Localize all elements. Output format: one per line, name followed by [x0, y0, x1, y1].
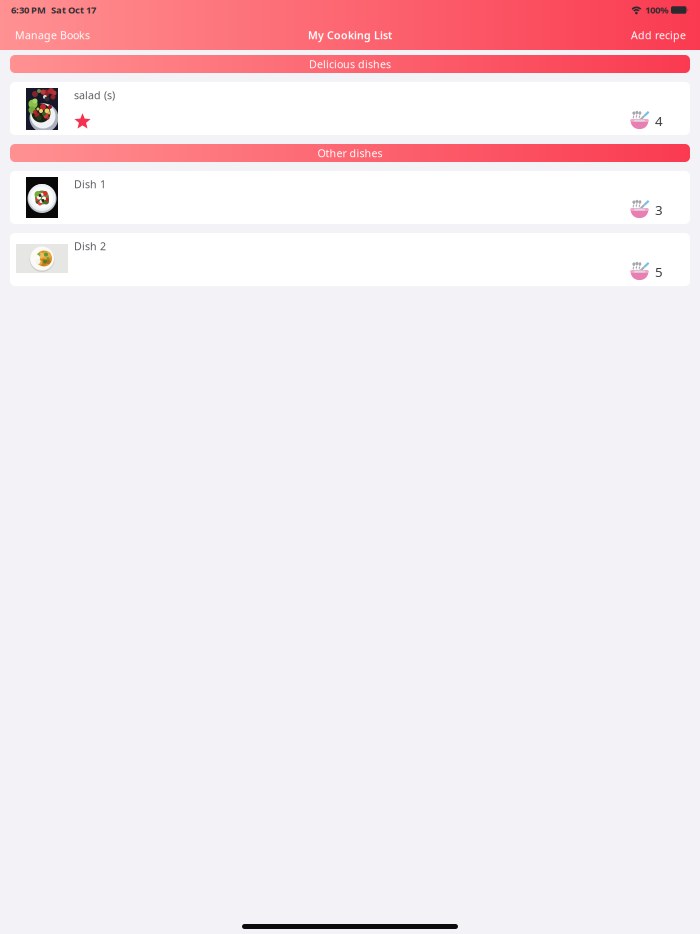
- staticText: 6:30 PM: [11, 4, 46, 16]
- staticText: Delicious dishes: [309, 57, 391, 71]
- button[interactable]: salad (s): [0, 82, 700, 135]
- staticText: Dish 2: [74, 239, 106, 253]
- staticText: 4: [655, 112, 663, 130]
- staticText: 100%: [645, 4, 668, 16]
- button[interactable]: Dish 1: [0, 171, 700, 224]
- staticText: Manage Books: [15, 28, 90, 42]
- staticText: Dish 1: [74, 177, 106, 191]
- staticText: Sat Oct 17: [51, 4, 96, 16]
- button[interactable]: Add recipe: [629, 21, 688, 49]
- staticText: Other dishes: [317, 146, 382, 160]
- staticText: 5: [655, 263, 663, 281]
- staticText: salad (s): [74, 88, 115, 102]
- staticText: Add recipe: [631, 28, 686, 42]
- button[interactable]: Manage Books: [13, 21, 92, 49]
- button[interactable]: Dish 2: [0, 233, 700, 286]
- staticText: 3: [655, 201, 663, 219]
- staticText: My Cooking List: [308, 28, 392, 42]
